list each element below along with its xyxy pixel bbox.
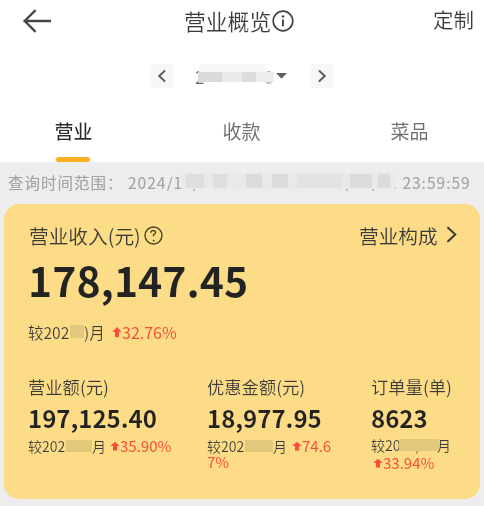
- staticText: 营业: [54, 117, 93, 145]
- staticText: 较2024/10月: [371, 435, 452, 455]
- staticText: 月: [92, 436, 106, 456]
- staticText: 2: [195, 64, 205, 89]
- staticText: 35.90%: [120, 435, 172, 457]
- staticText: 营业额(元): [28, 374, 109, 399]
- staticText: 74.6: [302, 435, 332, 457]
- staticText: 查询时间范围： 2024/10/01 00:00:00 - 2024/10/01…: [8, 171, 471, 191]
- button[interactable]: Next store: [310, 64, 334, 88]
- staticText: 定制: [433, 4, 474, 34]
- button[interactable]: 2: [192, 62, 287, 90]
- staticText: 较202: [28, 321, 70, 343]
- staticText: 0: [264, 64, 274, 89]
- staticText: 营业构成: [359, 221, 438, 250]
- staticText: )月: [84, 321, 105, 343]
- staticText: 营业收入(元): [29, 221, 141, 250]
- button[interactable]: 菜品: [359, 90, 459, 162]
- staticText: 较202: [28, 436, 66, 456]
- staticText: 32.76%: [122, 320, 177, 343]
- button[interactable]: 营业: [23, 90, 123, 162]
- staticText: 月: [273, 436, 287, 456]
- staticText: 178,147.45: [28, 249, 249, 308]
- staticText: 197,125.40: [28, 400, 157, 435]
- staticText: 收款: [222, 117, 261, 145]
- button[interactable]: Previous store: [150, 64, 174, 88]
- button[interactable]: 营业构成: [359, 221, 461, 250]
- button[interactable]: 定制: [431, 0, 476, 38]
- staticText: 菜品: [390, 117, 429, 145]
- staticText: 营业概览: [184, 5, 272, 37]
- button[interactable]: 收款: [191, 90, 291, 162]
- staticText: 较202: [207, 436, 245, 456]
- staticText: 优惠金额(元): [207, 374, 306, 399]
- button[interactable]: Back: [14, 0, 60, 42]
- staticText: 7%: [207, 451, 230, 473]
- staticText: 18,977.95: [207, 400, 322, 435]
- staticText: 8623: [371, 400, 428, 435]
- staticText: 33.94%: [383, 452, 435, 474]
- staticText: 订单量(单): [371, 374, 452, 399]
